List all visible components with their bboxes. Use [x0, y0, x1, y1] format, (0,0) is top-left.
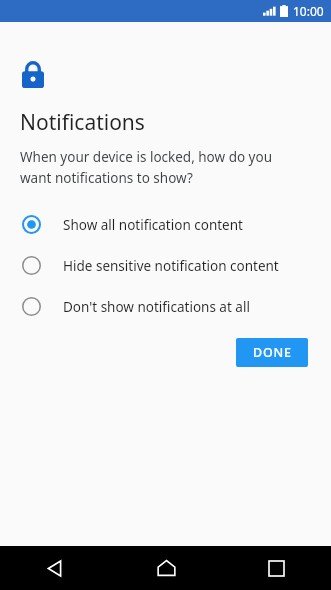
staticText: DONE — [253, 344, 292, 361]
staticText: Notifications — [20, 108, 145, 137]
staticText: Show all notification content — [63, 216, 243, 234]
button[interactable]: Hide sensitive notification content — [0, 245, 331, 286]
staticText: When your device is locked, how do you w… — [20, 148, 301, 187]
button[interactable]: Back — [0, 546, 111, 590]
button[interactable]: Show all notification content — [0, 204, 331, 245]
staticText: 10:00 — [293, 3, 324, 19]
button[interactable]: DONE — [236, 338, 308, 367]
button[interactable]: Don't show notifications at all — [0, 286, 331, 327]
staticText: Hide sensitive notification content — [63, 257, 279, 275]
staticText: Don't show notifications at all — [63, 298, 250, 316]
button[interactable]: Home — [111, 546, 221, 590]
button[interactable]: Recent apps — [221, 546, 331, 590]
